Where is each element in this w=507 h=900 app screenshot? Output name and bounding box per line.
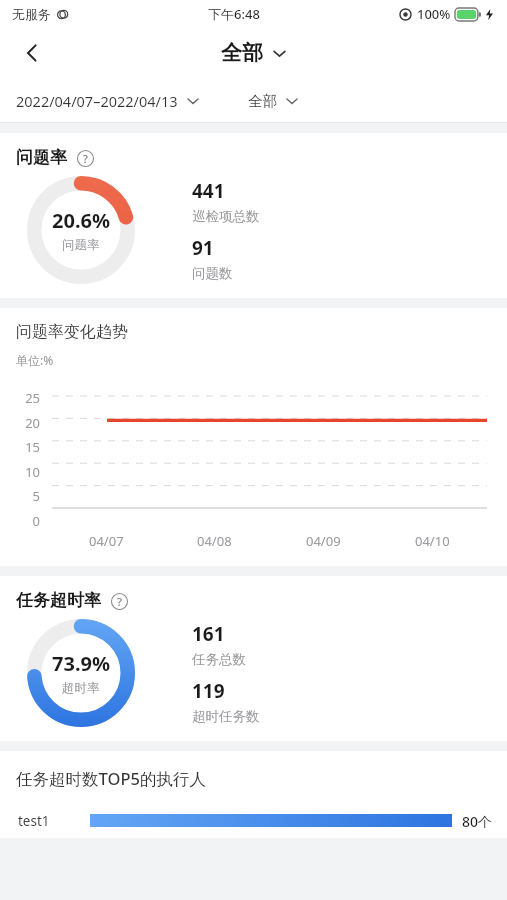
staticText: 10 (0, 463, 40, 479)
staticText: 问题率变化趋势 (16, 322, 128, 342)
staticText: 04/08 (197, 532, 232, 550)
staticText: 04/07 (89, 532, 124, 550)
button[interactable]: 2022/04/07–2022/04/13 (16, 91, 200, 111)
button[interactable]: 全部 (248, 92, 299, 110)
staticText: 73.9% (52, 650, 110, 677)
staticText: 超时率 (62, 680, 100, 696)
staticText: 04/09 (306, 532, 341, 550)
staticText: 0 (0, 512, 40, 528)
staticText: 80个 (462, 812, 493, 828)
staticText: 问题率 (62, 237, 100, 253)
staticText: 任务超时数TOP5的执行人 (16, 767, 206, 790)
button[interactable]: Back (10, 31, 54, 75)
staticText: 全部 (248, 92, 277, 110)
staticText: 巡检项总数 (192, 208, 260, 225)
staticText: 超时任务数 (192, 708, 260, 725)
button[interactable]: Help (75, 148, 95, 168)
staticText: 100% (417, 5, 451, 23)
staticText: 04/10 (415, 532, 450, 550)
staticText: 20 (0, 414, 40, 430)
staticText: 问题率 (16, 147, 67, 168)
staticText: 161 (192, 621, 225, 647)
staticText: 441 (192, 178, 225, 204)
button[interactable]: 全部 (221, 40, 287, 66)
staticText: 2022/04/07–2022/04/13 (16, 91, 178, 111)
staticText: 20.6% (52, 207, 110, 234)
staticText: 91 (192, 235, 214, 261)
staticText: 5 (0, 487, 40, 503)
staticText: 单位:% (16, 352, 54, 368)
staticText: test1 (18, 812, 90, 828)
staticText: 任务超时率 (16, 590, 101, 611)
staticText: ? (117, 594, 122, 609)
staticText: 全部 (221, 40, 263, 66)
staticText: 任务总数 (192, 651, 246, 668)
staticText: ? (83, 151, 88, 166)
staticText: 下午6:48 (208, 5, 260, 23)
staticText: 119 (192, 678, 225, 704)
staticText: 15 (0, 438, 40, 454)
staticText: 无服务 (12, 6, 51, 22)
staticText: 25 (0, 389, 40, 405)
button[interactable]: Help (109, 591, 129, 611)
staticText: 问题数 (192, 265, 233, 282)
